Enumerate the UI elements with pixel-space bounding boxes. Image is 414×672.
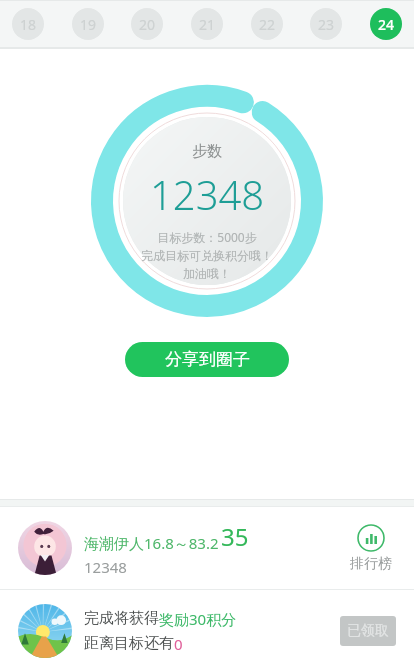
button[interactable]: 23: [310, 8, 342, 40]
button[interactable]: 20: [131, 8, 163, 40]
staticText: 完成目标可兑换积分哦！: [141, 248, 273, 263]
button[interactable]: 24: [370, 8, 402, 40]
staticText: 目标步数：5000步: [157, 229, 257, 245]
button[interactable]: 21: [191, 8, 223, 40]
staticText: 24: [378, 15, 395, 34]
staticText: 海潮伊人16.8～83.2: [84, 533, 219, 553]
staticText: 12348: [150, 167, 265, 221]
staticText: 奖励30积分: [159, 609, 237, 629]
staticText: 23: [318, 15, 335, 34]
staticText: 20: [139, 15, 156, 34]
staticText: 排行榜: [350, 555, 392, 573]
staticText: 35: [221, 520, 249, 553]
button[interactable]: 19: [72, 8, 104, 40]
staticText: 21: [199, 15, 216, 34]
button[interactable]: 完成将获得: [0, 590, 414, 672]
button[interactable]: 海潮伊人16.8～83.2: [0, 507, 414, 589]
button[interactable]: 22: [251, 8, 283, 40]
staticText: 已领取: [347, 622, 389, 640]
staticText: 加油哦！: [183, 266, 231, 281]
staticText: 19: [80, 15, 97, 34]
button[interactable]: 分享到圈子: [125, 342, 289, 377]
staticText: 18: [20, 15, 37, 34]
staticText: 22: [259, 15, 276, 34]
staticText: 步数: [192, 142, 222, 161]
staticText: 0: [174, 634, 183, 654]
button[interactable]: 18: [12, 8, 44, 40]
staticText: 完成将获得: [84, 609, 159, 628]
staticText: 12348: [84, 557, 127, 577]
staticText: 距离目标还有: [84, 634, 174, 653]
button[interactable]: 排行榜: [346, 522, 396, 575]
button[interactable]: 已领取: [340, 616, 396, 646]
staticText: 分享到圈子: [165, 349, 250, 370]
